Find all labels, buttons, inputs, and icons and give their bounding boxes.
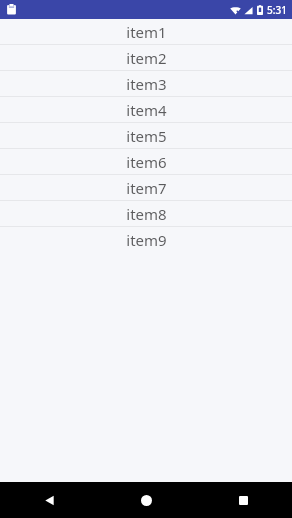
staticText: item2: [126, 48, 167, 68]
button[interactable]: item2: [0, 45, 292, 70]
staticText: item6: [126, 152, 167, 172]
button[interactable]: item3: [0, 71, 292, 96]
button[interactable]: item6: [0, 149, 292, 174]
button[interactable]: Back: [0, 482, 98, 518]
staticText: item3: [126, 74, 167, 94]
button[interactable]: item7: [0, 175, 292, 200]
staticText: item4: [126, 100, 167, 120]
staticText: item5: [126, 126, 167, 146]
staticText: item8: [126, 204, 167, 224]
staticText: item1: [126, 22, 167, 42]
button[interactable]: item8: [0, 201, 292, 226]
staticText: item7: [126, 178, 167, 198]
button[interactable]: Home: [98, 482, 195, 518]
staticText: item9: [126, 230, 167, 250]
staticText: 5:31: [267, 3, 287, 17]
button[interactable]: item5: [0, 123, 292, 148]
button[interactable]: item9: [0, 227, 292, 252]
button[interactable]: item4: [0, 97, 292, 122]
button[interactable]: item1: [0, 19, 292, 44]
button[interactable]: Recent apps: [195, 482, 292, 518]
